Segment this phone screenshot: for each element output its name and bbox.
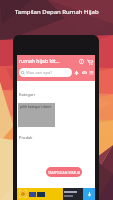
- staticText: pilih kategori disini: [20, 104, 52, 109]
- button[interactable]: pilih kategori disini: [18, 103, 55, 127]
- button[interactable]: Shopping cart: [85, 57, 94, 66]
- button[interactable]: Notifications: [73, 69, 80, 76]
- button[interactable]: Messages: [81, 69, 88, 76]
- button[interactable]: TAMPILKAN SEMUA: [46, 167, 82, 177]
- staticText: TAMPILKAN SEMUA: [48, 170, 81, 175]
- staticText: Tampilan Depan Rumah Hijab: [15, 8, 99, 16]
- staticText: Produk: [19, 135, 33, 140]
- button[interactable]: Mau cari apa?: [19, 68, 72, 77]
- staticText: Mau cari apa?: [26, 70, 52, 75]
- button[interactable]: Menu: [88, 69, 95, 76]
- staticText: Kategori: [19, 92, 35, 97]
- button[interactable]: Install app: [83, 188, 95, 200]
- button[interactable]: Information: [77, 57, 85, 65]
- staticText: rumah hijab kit...: [19, 58, 60, 65]
